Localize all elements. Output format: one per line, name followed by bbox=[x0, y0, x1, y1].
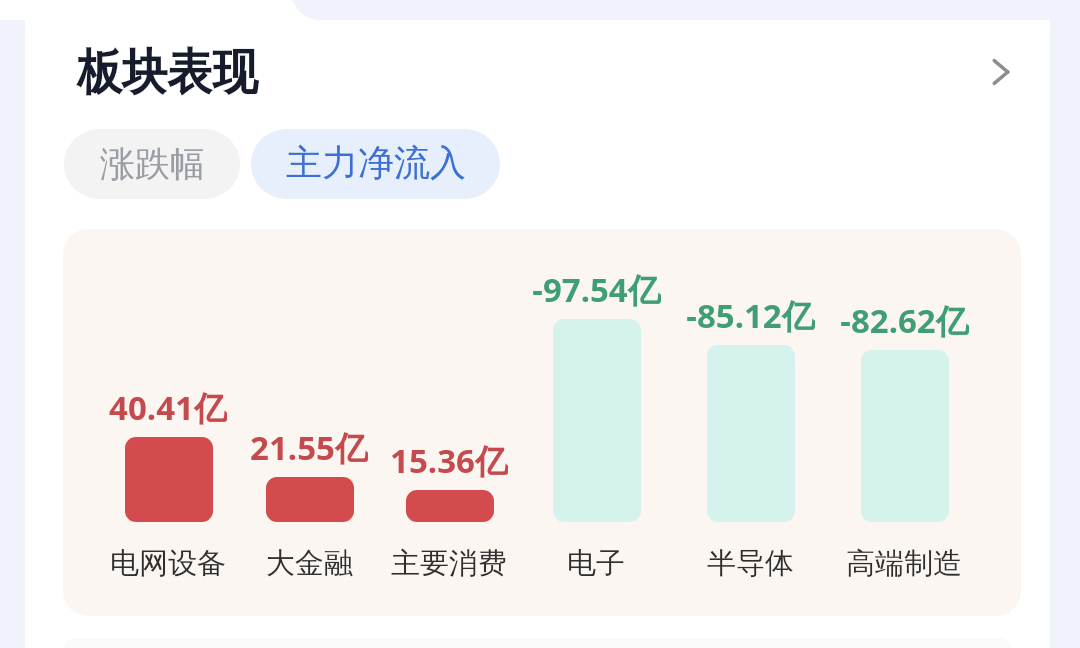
staticText: 涨跌幅 bbox=[100, 142, 205, 186]
staticText: 板块表现 bbox=[77, 42, 257, 104]
staticText: 21.55亿 bbox=[250, 425, 368, 469]
staticText: 半导体 bbox=[707, 545, 794, 582]
staticText: 主力净流入 bbox=[286, 140, 466, 185]
staticText: 40.41亿 bbox=[109, 385, 227, 429]
staticText: 电子 bbox=[567, 545, 625, 582]
staticText: 高端制造 bbox=[846, 545, 962, 582]
button[interactable]: 主力净流入 bbox=[251, 129, 500, 199]
staticText: -82.62亿 bbox=[840, 298, 969, 342]
staticText: 主要消费 bbox=[391, 545, 507, 582]
staticText: 15.36亿 bbox=[390, 438, 508, 482]
staticText: -85.12亿 bbox=[686, 293, 815, 337]
staticText: -97.54亿 bbox=[532, 267, 661, 311]
button[interactable]: 涨跌幅 bbox=[64, 129, 240, 199]
staticText: 大金融 bbox=[266, 545, 353, 582]
button[interactable]: 板块表现 bbox=[62, 30, 322, 114]
button[interactable]: View all sectors bbox=[968, 39, 1034, 105]
staticText: 电网设备 bbox=[110, 545, 226, 582]
